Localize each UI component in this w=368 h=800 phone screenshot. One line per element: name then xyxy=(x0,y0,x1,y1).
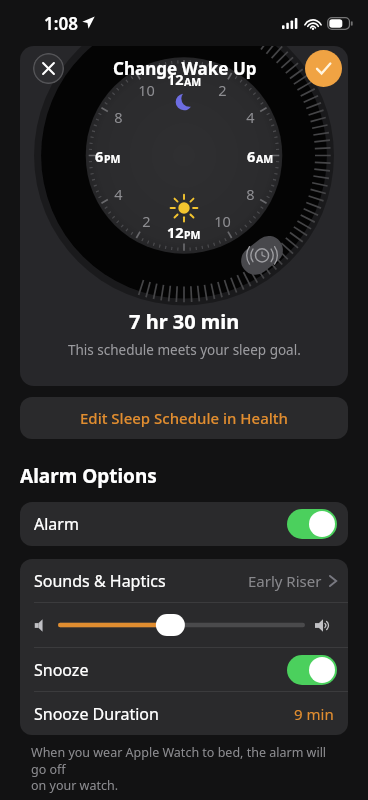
staticText: 4 xyxy=(114,184,123,204)
staticText: Alarm Options xyxy=(20,463,157,489)
staticText: When you wear Apple Watch to bed, the al… xyxy=(31,744,344,793)
other: Volume high xyxy=(314,618,334,633)
button[interactable]: Snooze Duration xyxy=(20,692,348,735)
staticText: Early Riser xyxy=(248,571,322,591)
staticText: PM xyxy=(184,228,201,242)
button[interactable]: Edit Sleep Schedule in Health xyxy=(20,397,348,439)
staticText: Edit Sleep Schedule in Health xyxy=(80,408,288,428)
staticText: Snooze xyxy=(34,659,89,681)
other: Volume low xyxy=(34,618,49,633)
button[interactable]: Toggle switch, on xyxy=(287,509,337,539)
staticText: AM xyxy=(256,152,274,166)
button[interactable]: Sounds & Haptics xyxy=(20,559,348,602)
staticText: 12 xyxy=(167,222,184,242)
staticText: 9 min xyxy=(294,704,334,724)
staticText: 2 xyxy=(218,80,227,100)
staticText: 8 xyxy=(246,184,255,204)
staticText: 4 xyxy=(246,107,255,127)
button[interactable]: Snooze xyxy=(20,648,348,691)
staticText: 12 xyxy=(167,69,184,89)
staticText: 10 xyxy=(138,80,155,100)
staticText: Alarm xyxy=(34,513,79,535)
staticText: PM xyxy=(104,152,121,166)
button[interactable]: Confirm xyxy=(305,50,342,87)
button[interactable] xyxy=(58,613,305,637)
staticText: 10 xyxy=(214,211,231,231)
staticText: 6 xyxy=(95,146,104,166)
staticText: 2 xyxy=(142,211,151,231)
staticText: Sounds & Haptics xyxy=(34,570,166,592)
staticText: 1:08 xyxy=(44,12,78,35)
button[interactable]: Toggle switch, on xyxy=(287,655,337,685)
button[interactable]: Alarm xyxy=(20,502,348,546)
staticText: AM xyxy=(184,75,202,89)
button[interactable]: Close xyxy=(33,53,64,84)
staticText: This schedule meets your sleep goal. xyxy=(68,341,301,359)
staticText: Change Wake Up xyxy=(113,57,257,80)
staticText: 6 xyxy=(247,146,256,166)
staticText: 7 hr 30 min xyxy=(129,308,240,335)
staticText: 8 xyxy=(114,107,123,127)
staticText: Snooze Duration xyxy=(34,703,159,725)
